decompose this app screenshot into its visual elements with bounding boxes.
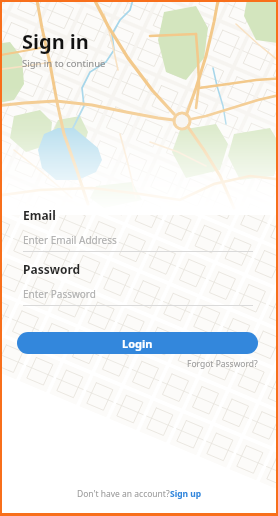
button[interactable]: Enter Email Address (23, 228, 253, 252)
staticText: Login (122, 336, 153, 351)
button[interactable]: Enter Password (23, 282, 253, 306)
staticText: Sign up (170, 488, 202, 500)
staticText: Enter Email Address (23, 233, 117, 247)
staticText: Sign in to continue (22, 57, 106, 70)
button[interactable]: Login (17, 332, 258, 354)
staticText: Email (23, 207, 56, 223)
staticText: Forgot Password? (187, 358, 258, 370)
staticText: Sign in (22, 28, 89, 55)
staticText: Don't have an account? (77, 488, 170, 500)
staticText: Enter Password (23, 287, 96, 301)
button[interactable]: Sign up (170, 488, 202, 500)
staticText: Password (23, 261, 81, 277)
button[interactable]: Forgot Password? (187, 358, 258, 370)
